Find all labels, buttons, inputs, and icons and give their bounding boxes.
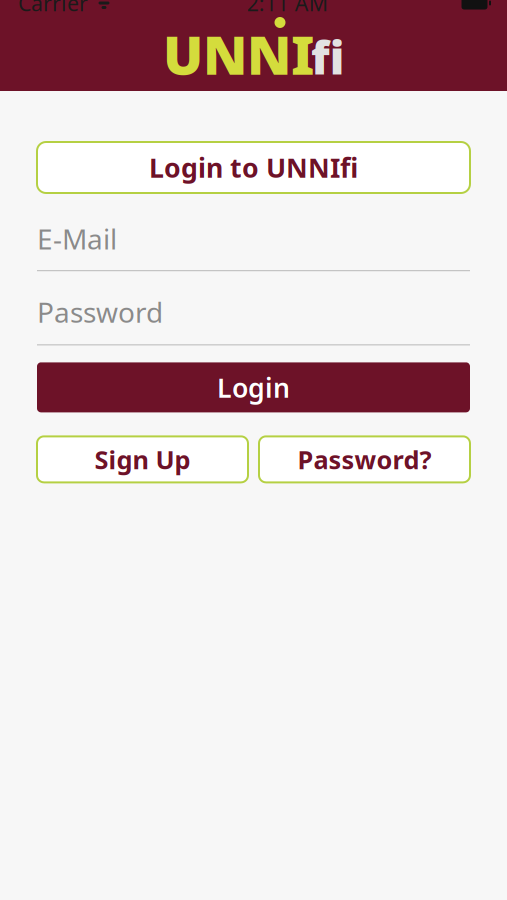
button[interactable]: Login to UNNIfi [37,142,470,193]
button[interactable]: Login [37,362,470,412]
staticText: fi [311,27,344,87]
staticText: E-Mail [37,220,117,257]
staticText: Password [37,293,163,330]
button[interactable]: Password [37,271,470,345]
staticText: Password? [297,442,431,476]
button[interactable]: Sign Up [37,436,248,482]
button[interactable]: Password? [259,436,470,482]
button[interactable]: E-Mail [37,193,470,271]
staticText: Sign Up [94,442,190,476]
staticText: 2:11 AM [247,0,328,17]
staticText: UNNI [163,19,314,89]
staticText: Login to UNNIfi [149,150,358,185]
staticText: Login [217,370,290,405]
staticText: Carrier [18,0,88,17]
